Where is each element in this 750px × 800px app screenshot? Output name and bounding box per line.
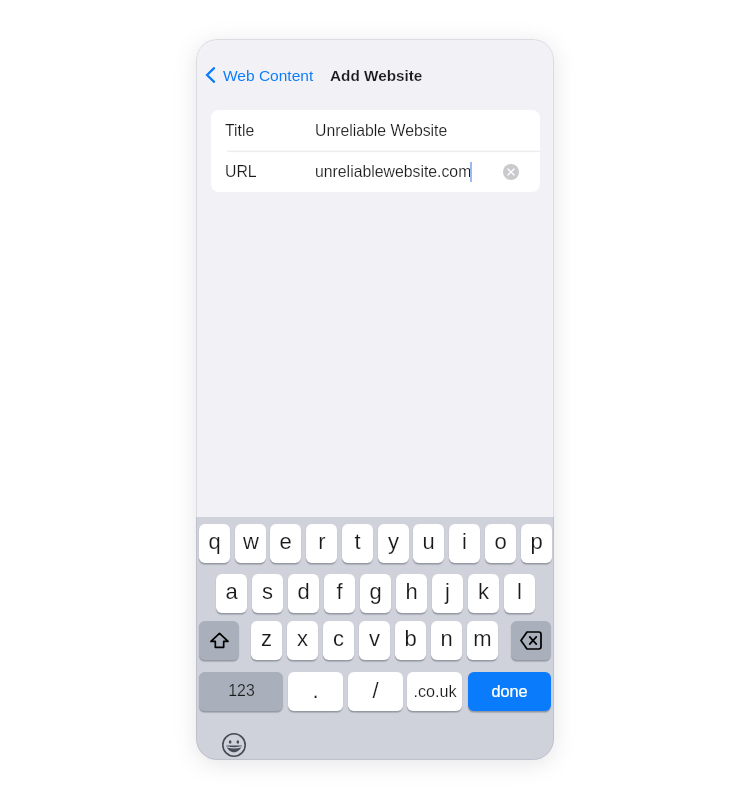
staticText: Web Content xyxy=(223,67,314,84)
staticText: r xyxy=(318,529,326,554)
button[interactable]: l xyxy=(504,574,535,613)
button[interactable]: t xyxy=(342,524,373,563)
button[interactable]: URL xyxy=(211,152,540,192)
button[interactable]: z xyxy=(251,621,282,660)
button[interactable]: c xyxy=(323,621,354,660)
button[interactable]: q xyxy=(199,524,230,563)
staticText: done xyxy=(491,682,528,700)
staticText: 123 xyxy=(228,682,255,700)
staticText: .co.uk xyxy=(413,682,457,700)
button[interactable]: b xyxy=(395,621,426,660)
staticText: w xyxy=(243,529,259,554)
staticText: q xyxy=(208,529,221,554)
staticText: g xyxy=(369,579,382,604)
staticText: e xyxy=(279,529,292,554)
staticText: t xyxy=(354,529,361,554)
staticText: j xyxy=(445,579,450,604)
button[interactable]: g xyxy=(360,574,391,613)
button[interactable]: o xyxy=(485,524,516,563)
button[interactable]: .co.uk xyxy=(407,672,462,711)
button[interactable]: j xyxy=(432,574,463,613)
staticText: a xyxy=(225,579,238,604)
staticText: c xyxy=(333,626,344,651)
button[interactable]: Clear text xyxy=(499,160,523,184)
button[interactable]: k xyxy=(468,574,499,613)
staticText: . xyxy=(312,678,319,703)
staticText: URL xyxy=(225,163,257,181)
staticText: b xyxy=(404,626,417,651)
button[interactable]: Web Content xyxy=(204,61,314,89)
button[interactable]: . xyxy=(288,672,343,711)
staticText: f xyxy=(336,579,343,604)
button[interactable]: n xyxy=(431,621,462,660)
staticText: unreliablewebsite.com xyxy=(315,163,472,181)
button[interactable]: x xyxy=(287,621,318,660)
button[interactable]: f xyxy=(324,574,355,613)
staticText: i xyxy=(462,529,467,554)
staticText: v xyxy=(369,626,380,651)
button[interactable]: / xyxy=(348,672,403,711)
button[interactable]: Emoji keyboard xyxy=(220,731,248,759)
staticText: Title xyxy=(225,122,255,140)
staticText: l xyxy=(517,579,522,604)
staticText: n xyxy=(440,626,453,651)
staticText: k xyxy=(478,579,489,604)
button[interactable]: w xyxy=(235,524,266,563)
button[interactable]: r xyxy=(306,524,337,563)
staticText: p xyxy=(530,529,543,554)
button[interactable]: Title xyxy=(211,110,540,151)
button[interactable]: m xyxy=(467,621,498,660)
staticText: / xyxy=(372,678,379,703)
staticText: u xyxy=(422,529,435,554)
button[interactable]: d xyxy=(288,574,319,613)
button[interactable]: y xyxy=(378,524,409,563)
button[interactable]: a xyxy=(216,574,247,613)
button[interactable]: done xyxy=(468,672,551,711)
staticText: s xyxy=(262,579,273,604)
staticText: Add Website xyxy=(330,67,423,84)
staticText: d xyxy=(297,579,310,604)
staticText: Unreliable Website xyxy=(315,122,448,140)
staticText: m xyxy=(473,626,492,651)
staticText: o xyxy=(494,529,507,554)
staticText: x xyxy=(297,626,308,651)
button[interactable]: 123 xyxy=(199,672,283,711)
button[interactable]: u xyxy=(413,524,444,563)
button[interactable]: v xyxy=(359,621,390,660)
staticText: y xyxy=(388,529,399,554)
button[interactable]: Shift xyxy=(199,621,239,660)
button[interactable]: e xyxy=(270,524,301,563)
staticText: z xyxy=(261,626,272,651)
button[interactable]: Backspace xyxy=(511,621,551,660)
button[interactable]: i xyxy=(449,524,480,563)
button[interactable]: p xyxy=(521,524,552,563)
staticText: h xyxy=(405,579,418,604)
button[interactable]: h xyxy=(396,574,427,613)
button[interactable]: s xyxy=(252,574,283,613)
